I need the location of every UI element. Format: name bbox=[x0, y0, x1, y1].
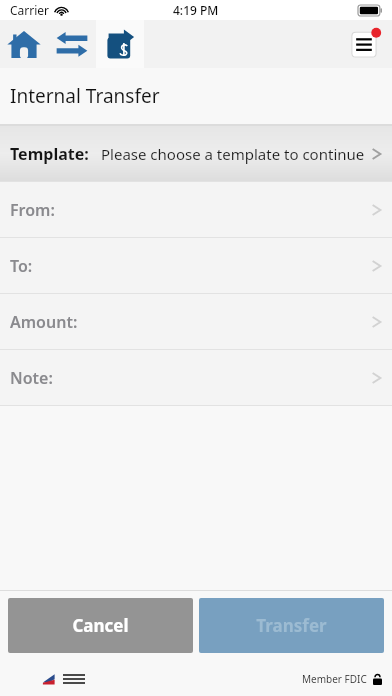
staticText: Template: bbox=[10, 143, 89, 165]
button[interactable]: Template: bbox=[0, 126, 392, 181]
staticText: Internal Transfer bbox=[10, 83, 160, 109]
staticText: Carrier bbox=[10, 2, 50, 18]
staticText: Transfer bbox=[256, 614, 327, 637]
staticText: Please choose a template to continue bbox=[101, 144, 365, 164]
button[interactable]: To: bbox=[0, 238, 392, 293]
button[interactable]: Cancel bbox=[8, 598, 193, 653]
staticText: Amount: bbox=[10, 311, 78, 333]
staticText: Member FDIC bbox=[302, 672, 367, 686]
button[interactable]: From: bbox=[0, 182, 392, 237]
staticText: Cancel bbox=[72, 614, 129, 637]
button[interactable]: Amount: bbox=[0, 294, 392, 349]
button[interactable]: Home bbox=[0, 20, 48, 68]
staticText: Note: bbox=[10, 367, 53, 389]
button[interactable]: Transfer bbox=[199, 598, 384, 653]
staticText: To: bbox=[10, 255, 33, 277]
button[interactable]: Internal Transfer bbox=[96, 20, 144, 68]
button[interactable]: Menu bbox=[348, 27, 382, 61]
button[interactable]: Note: bbox=[0, 350, 392, 405]
staticText: From: bbox=[10, 199, 55, 221]
staticText: 4:19 PM bbox=[173, 2, 219, 18]
button[interactable]: Transfers bbox=[48, 20, 96, 68]
